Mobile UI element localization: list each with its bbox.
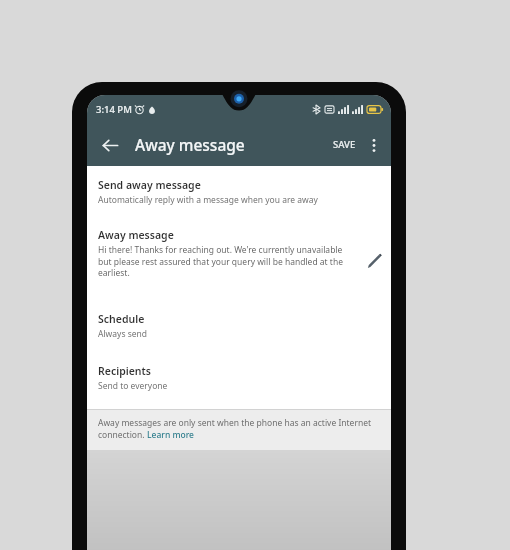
staticText: Send to everyone — [98, 380, 168, 392]
button[interactable]: Send away message — [87, 175, 391, 212]
staticText: SAVE — [333, 138, 356, 151]
button[interactable]: Back — [93, 128, 127, 162]
staticText: Hi there! Thanks for reaching out. We're… — [98, 244, 351, 279]
staticText: Schedule — [98, 312, 145, 326]
button[interactable]: Away message — [87, 228, 391, 279]
staticText: Send away message — [98, 178, 201, 192]
button[interactable]: Learn more — [147, 429, 194, 441]
staticText: Automatically reply with a message when … — [98, 194, 318, 206]
staticText: Away message — [135, 134, 245, 155]
staticText: Learn more — [147, 429, 194, 441]
staticText: Recipients — [98, 364, 151, 378]
staticText: Away messages are only sent when the pho… — [98, 417, 372, 429]
button[interactable]: Edit away message — [357, 244, 391, 278]
button[interactable]: SAVE — [328, 134, 361, 155]
staticText: Away message — [98, 228, 174, 242]
staticText: 3:14 PM — [96, 103, 132, 116]
staticText: connection. — [98, 429, 147, 441]
button[interactable]: Recipients — [87, 361, 391, 397]
button[interactable]: Schedule — [87, 309, 391, 345]
staticText: Always send — [98, 328, 148, 340]
button[interactable]: More options — [359, 130, 389, 160]
